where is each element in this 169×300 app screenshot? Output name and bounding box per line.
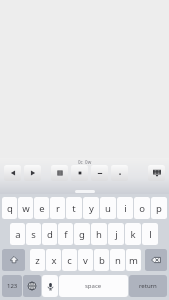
button[interactable]: Bullet: [71, 165, 88, 181]
staticText: m: [129, 254, 138, 267]
button[interactable]: f: [58, 223, 73, 245]
staticText: d: [47, 228, 53, 241]
staticText: u: [105, 202, 111, 215]
button[interactable]: Period: [111, 165, 128, 181]
button[interactable]: n: [110, 249, 125, 271]
staticText: space: [85, 282, 102, 290]
button[interactable]: l: [142, 223, 158, 245]
button[interactable]: [42, 275, 58, 297]
staticText: q: [7, 202, 13, 215]
button[interactable]: a: [10, 223, 25, 245]
staticText: a: [15, 228, 21, 241]
staticText: h: [96, 228, 102, 241]
button[interactable]: Emoji: [23, 275, 41, 297]
button[interactable]: x: [46, 249, 61, 271]
button[interactable]: Next field: [24, 165, 41, 181]
staticText: o: [139, 202, 145, 215]
staticText: p: [156, 202, 162, 215]
staticText: r: [56, 202, 60, 215]
button[interactable]: space: [59, 275, 128, 297]
button[interactable]: c: [62, 249, 77, 271]
button[interactable]: e: [34, 197, 49, 219]
staticText: v: [83, 254, 88, 267]
staticText: w: [22, 202, 30, 215]
button[interactable]: Hide keyboard: [148, 165, 165, 181]
button[interactable]: j: [108, 223, 124, 245]
staticText: e: [39, 202, 45, 215]
button[interactable]: y: [83, 197, 99, 219]
button[interactable]: m: [126, 249, 141, 271]
button[interactable]: r: [50, 197, 65, 219]
staticText: l: [149, 228, 152, 241]
button[interactable]: return: [129, 275, 167, 297]
button[interactable]: i: [117, 197, 133, 219]
button[interactable]: o: [134, 197, 150, 219]
button[interactable]: Backspace: [145, 249, 167, 271]
button[interactable]: u: [100, 197, 116, 219]
button[interactable]: z: [30, 249, 45, 271]
staticText: t: [72, 202, 76, 215]
button[interactable]: v: [78, 249, 93, 271]
staticText: n: [115, 254, 121, 267]
staticText: k: [130, 228, 136, 241]
button[interactable]: w: [18, 197, 33, 219]
staticText: return: [139, 282, 157, 290]
button[interactable]: h: [91, 223, 107, 245]
button[interactable]: Dash: [91, 165, 108, 181]
staticText: g: [79, 228, 85, 241]
button[interactable]: Shift: [2, 249, 25, 271]
button[interactable]: k: [125, 223, 141, 245]
button[interactable]: q: [2, 197, 17, 219]
staticText: y: [89, 202, 94, 215]
staticText: z: [35, 254, 40, 267]
staticText: s: [31, 228, 36, 241]
staticText: f: [64, 228, 68, 241]
button[interactable]: Previous field: [4, 165, 21, 181]
button[interactable]: 123: [2, 275, 22, 297]
staticText: 0c 0w: [78, 159, 92, 165]
button[interactable]: t: [66, 197, 82, 219]
button[interactable]: b: [94, 249, 109, 271]
staticText: b: [99, 254, 105, 267]
staticText: j: [115, 228, 118, 241]
button[interactable]: Hash: [51, 165, 68, 181]
staticText: x: [51, 254, 57, 267]
staticText: c: [67, 254, 72, 267]
button[interactable]: s: [26, 223, 41, 245]
staticText: 123: [7, 282, 18, 290]
button[interactable]: p: [151, 197, 167, 219]
staticText: i: [124, 202, 127, 215]
button[interactable]: g: [74, 223, 90, 245]
button[interactable]: d: [42, 223, 57, 245]
